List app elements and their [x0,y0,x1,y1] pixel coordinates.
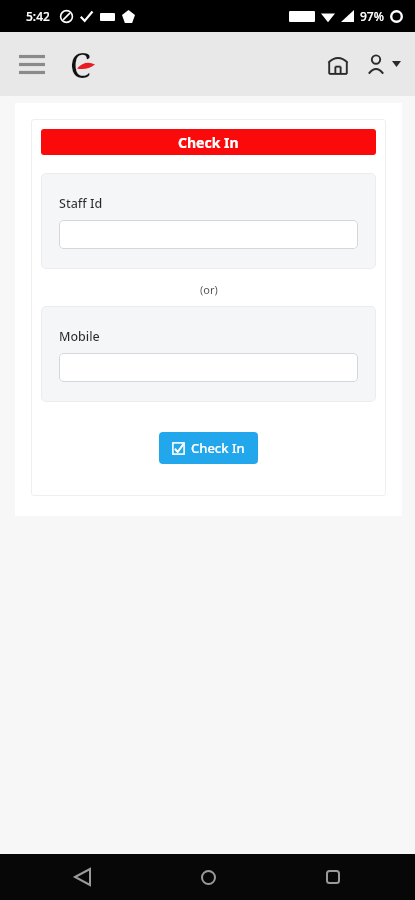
staticText: Mobile [59,328,100,345]
button[interactable]: Home [316,42,360,86]
staticText: 5:42 [26,8,50,24]
button[interactable]: Home [186,855,230,899]
button[interactable]: Recent apps [311,855,355,899]
staticText: Check In [178,133,239,152]
staticText: Staff Id [59,195,103,212]
staticText: C [70,42,91,86]
staticText: (or) [200,282,218,297]
button[interactable]: Logo [58,42,102,86]
staticText: 97% [360,8,384,24]
button[interactable]: Account [360,42,407,86]
button[interactable]: Check In [41,129,376,155]
button[interactable]: Check In [159,432,258,464]
button[interactable]: Staff Id input [59,220,358,249]
button[interactable]: Back [60,855,104,899]
staticText: Check In [191,439,245,457]
button[interactable]: Mobile input [59,353,358,382]
button[interactable]: Menu [12,44,52,84]
